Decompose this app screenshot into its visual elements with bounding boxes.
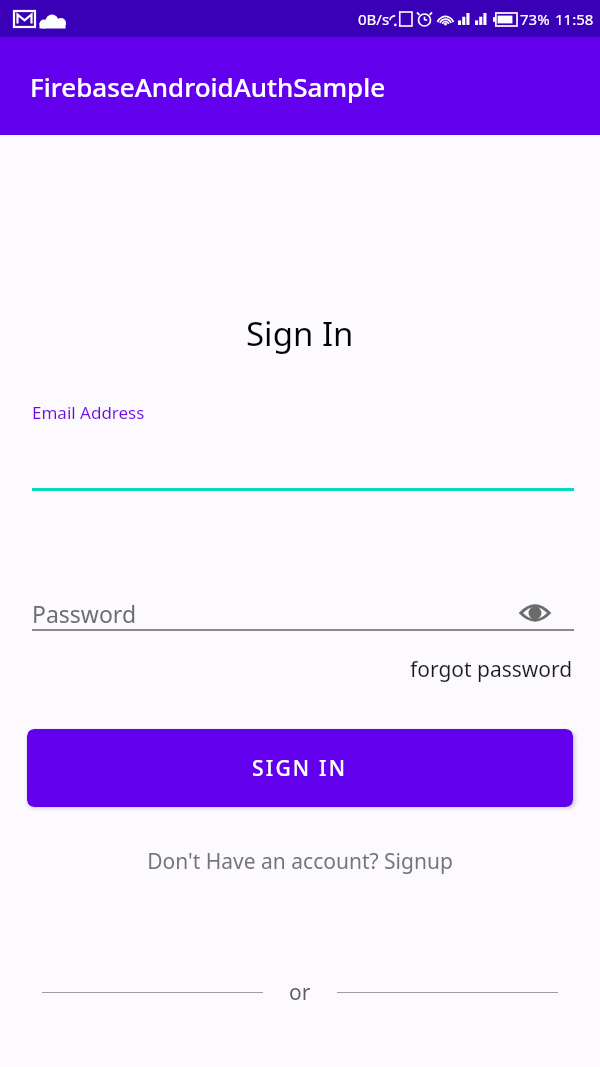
button[interactable]: Don't Have an account? Signup bbox=[147, 847, 453, 876]
staticText: 73% bbox=[520, 9, 550, 29]
button[interactable]: Show password bbox=[508, 593, 562, 633]
staticText: forgot password bbox=[410, 655, 573, 684]
staticText: FirebaseAndroidAuthSample bbox=[30, 69, 386, 104]
staticText: Password bbox=[32, 598, 137, 629]
staticText: or bbox=[289, 978, 311, 1007]
staticText: 11:58 bbox=[555, 9, 594, 29]
button[interactable]: SIGN IN bbox=[27, 729, 573, 807]
staticText: Don't Have an account? Signup bbox=[147, 847, 453, 876]
staticText: 0B/s bbox=[358, 9, 390, 29]
staticText: Sign In bbox=[246, 311, 354, 356]
staticText: Email Address bbox=[32, 401, 145, 424]
button[interactable]: Password bbox=[32, 593, 574, 633]
button[interactable]: forgot password bbox=[410, 655, 573, 684]
staticText: SIGN IN bbox=[252, 754, 348, 783]
